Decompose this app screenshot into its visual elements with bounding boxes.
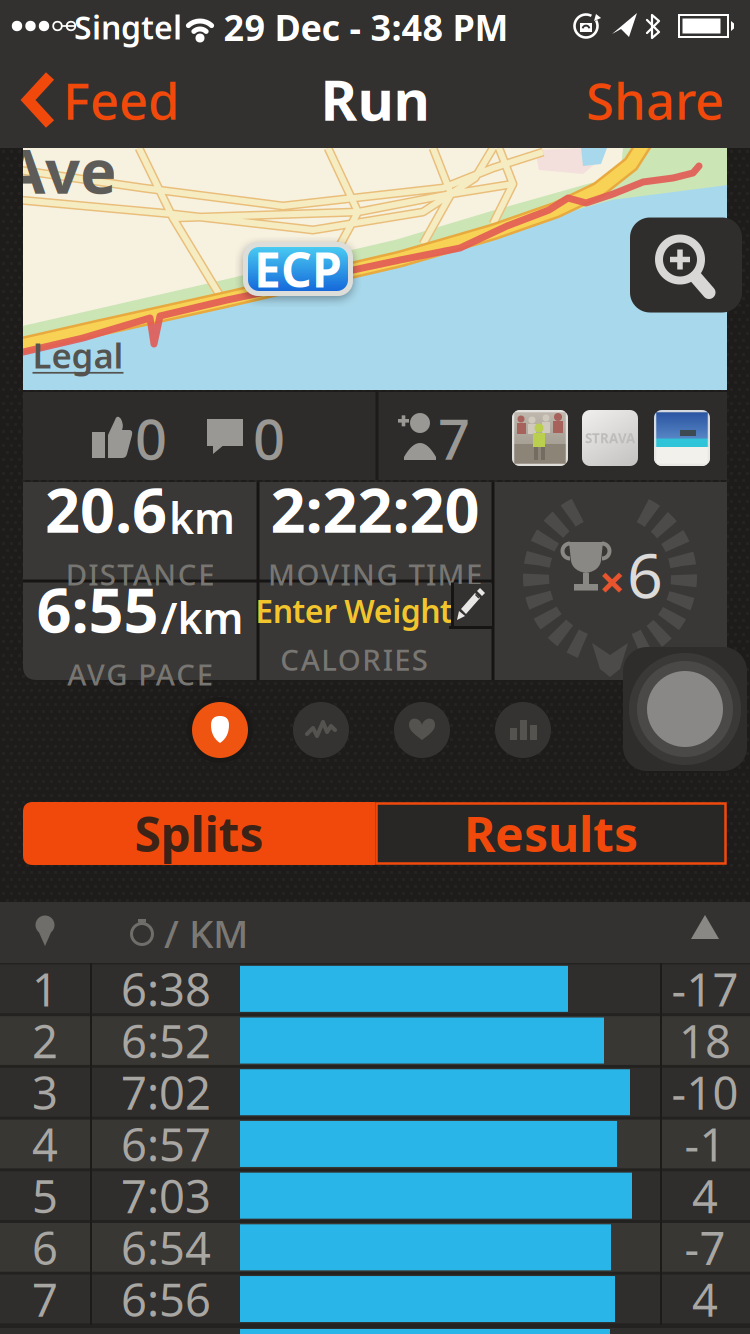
staticText: 6:52 [121,1010,211,1071]
button[interactable]: Share [575,68,735,132]
staticText: Ave [3,129,117,211]
staticText: 7:03 [121,1165,211,1226]
button[interactable]: Sort by elevation [675,907,735,957]
button[interactable]: Activity playback [623,647,747,771]
button[interactable]: Elevation [495,702,551,758]
staticText: 2 [32,1010,58,1071]
staticText: 6:55 [36,568,158,650]
staticText: Run [320,62,429,136]
staticText: Legal [32,332,123,378]
staticText: 6:54 [121,1217,211,1277]
button[interactable]: Back to Feed [16,68,196,132]
button[interactable]: Photo 2 [582,410,638,466]
staticText: 6:56 [121,1269,211,1329]
staticText: Singtel [74,6,182,48]
button[interactable]: Edit weight [454,584,492,626]
staticText: MOVING TIME [268,555,482,594]
staticText: STRAVA [585,429,635,447]
staticText: -1 [684,1114,725,1174]
button[interactable]: Photo 1 [512,410,568,466]
staticText: 4 [692,1165,718,1226]
staticText: 7:02 [121,1062,211,1122]
staticText: Results [464,802,638,865]
button[interactable]: Pace analysis [293,702,349,758]
staticText: DISTANCE [66,555,214,594]
staticText: 6:38 [121,959,211,1019]
button[interactable]: Comments [191,397,301,477]
staticText: -7 [684,1217,725,1277]
button[interactable]: Map [187,697,253,763]
staticText: 20.6 [45,468,167,550]
staticText: 5 [32,1165,58,1226]
staticText: -17 [671,959,738,1019]
staticText: 3 [32,1062,58,1122]
staticText: km [169,489,235,546]
staticText: 0 [135,401,167,475]
button[interactable]: Splits [23,802,375,865]
staticText: 7 [32,1269,58,1329]
staticText: ECP [254,237,342,301]
staticText: 7 [438,401,470,475]
staticText: × [599,551,625,611]
staticText: 4 [692,1269,718,1329]
staticText: 0 [253,401,285,475]
staticText: 2:22:20 [270,468,479,550]
staticText: 6:57 [121,1114,211,1174]
staticText: 6 [32,1217,58,1277]
button[interactable]: Heart rate [394,702,450,758]
staticText: 4 [32,1114,58,1174]
staticText: AVG PACE [67,655,213,694]
staticText: CALORIES [280,640,428,679]
staticText: Share [586,66,724,134]
staticText: Enter Weight [255,589,453,632]
staticText: -10 [671,1062,738,1122]
button[interactable]: Photo 3 [654,410,710,466]
staticText: 29 Dec - 3:48 PM [223,3,508,51]
button[interactable]: Results [375,802,727,865]
staticText: /km [160,589,243,646]
staticText: Splits [134,802,263,865]
staticText: Feed [63,66,179,134]
staticText: 1 [32,959,58,1019]
button[interactable]: Enter Weight [214,586,494,682]
button[interactable]: Kudos [62,397,202,477]
staticText: 18 [679,1010,731,1071]
staticText: / KM [164,907,248,959]
button[interactable]: Zoom map [630,217,742,312]
button[interactable]: Athletes who gave kudos [378,397,488,477]
staticText: 6 [627,532,663,616]
